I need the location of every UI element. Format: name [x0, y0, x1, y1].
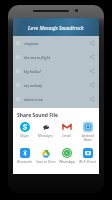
button[interactable]: Wi-Fi Direct [77, 148, 98, 164]
button[interactable]: Gmail [56, 122, 77, 138]
staticText: Wi-Fi Direct [79, 160, 96, 164]
button[interactable]: Love Message Soundtrack [13, 18, 99, 36]
other: Share [89, 96, 95, 102]
staticText: alarm tone [24, 97, 43, 102]
staticText: WhatsApp [59, 160, 75, 164]
staticText: big ballad [24, 69, 41, 74]
staticText: Messages [38, 134, 53, 138]
button[interactable]: Android Beam [77, 122, 98, 142]
staticText: Skype [20, 134, 29, 138]
staticText: ringtone [24, 41, 39, 46]
other: Share [89, 68, 95, 74]
other: Share [89, 40, 95, 46]
button[interactable]: Messages [35, 122, 56, 138]
button[interactable]: the one in flight [13, 50, 99, 64]
other: Share [89, 54, 95, 60]
button[interactable]: alarm tone [13, 92, 99, 106]
staticText: Gmail [62, 134, 71, 138]
button[interactable]: Bluetooth [14, 148, 35, 164]
button[interactable]: ringtone [13, 36, 99, 50]
button[interactable]: big ballad [13, 64, 99, 78]
button[interactable]: WhatsApp [56, 148, 77, 164]
staticText: Save to Drive [36, 160, 56, 164]
staticText: my melody [24, 83, 43, 88]
button[interactable]: my melody [13, 78, 99, 92]
other: Share [89, 82, 95, 88]
button[interactable]: Skype [14, 122, 35, 138]
staticText: Android Beam [82, 134, 94, 142]
button[interactable]: Save to Drive [35, 148, 56, 164]
staticText: the one in flight [24, 55, 50, 60]
staticText: Bluetooth [17, 160, 32, 164]
staticText: Love Message Soundtrack [28, 25, 84, 31]
staticText: Share Sound File [17, 112, 58, 119]
